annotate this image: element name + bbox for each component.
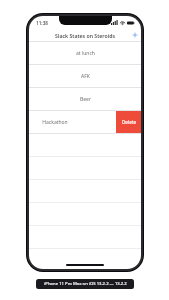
staticText: at lunch	[76, 50, 95, 57]
button[interactable]: Add state	[129, 29, 141, 41]
button[interactable]: Beer	[29, 88, 141, 110]
button[interactable]: AFK	[29, 65, 141, 87]
button[interactable]: at lunch	[29, 42, 141, 64]
button[interactable]: Hackathon	[29, 111, 116, 133]
staticText: 11:38	[36, 20, 48, 26]
staticText: Delete	[122, 119, 136, 125]
staticText: Slack States on Steroids	[55, 32, 115, 39]
staticText: iPhone 11 Pro Max on iOS 13.2.2 — 13.2.2	[44, 281, 127, 287]
staticText: AFK	[81, 73, 90, 80]
staticText: Hackathon	[42, 119, 68, 126]
button[interactable]: Delete	[116, 111, 141, 133]
staticText: Beer	[80, 96, 91, 103]
